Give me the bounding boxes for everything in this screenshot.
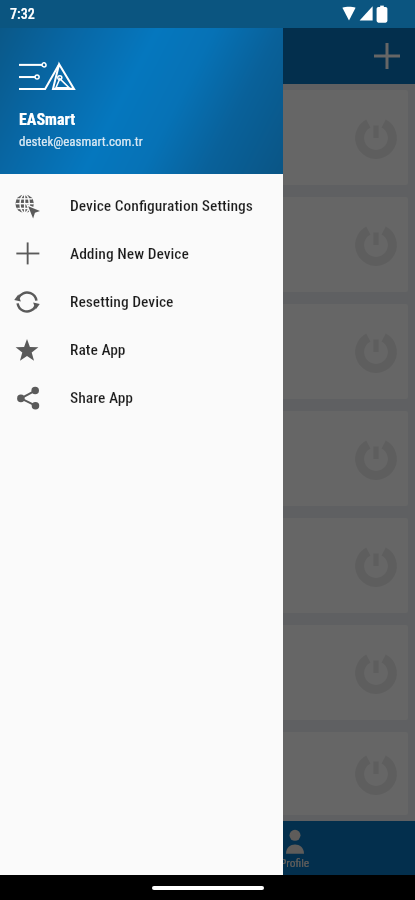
button[interactable]: Rate App [0, 326, 283, 374]
staticText: EASmart [56, 45, 126, 68]
staticText: Adding New Device [70, 245, 189, 263]
staticText: Profile [280, 856, 310, 869]
button[interactable]: Device [7, 90, 408, 185]
staticText: Resetting Device [70, 293, 174, 311]
button[interactable]: Device [7, 304, 408, 399]
button[interactable]: Device [7, 197, 408, 292]
button[interactable]: Device [7, 411, 408, 506]
staticText: EASmart [19, 110, 76, 129]
button[interactable]: Device Configuration Settings [0, 182, 283, 230]
button[interactable]: Add new device [359, 28, 415, 84]
staticText: Device [25, 118, 67, 137]
button[interactable]: Profile [206, 821, 383, 875]
staticText: Device [25, 225, 67, 244]
staticText: Device [25, 332, 67, 351]
button[interactable]: Adding New Device [0, 230, 283, 278]
staticText: destek@easmart.com.tr [19, 134, 143, 149]
button[interactable]: Share App [0, 374, 283, 422]
button[interactable]: Resetting Device [0, 278, 283, 326]
staticText: Share App [70, 389, 134, 407]
button[interactable]: Open navigation drawer [0, 28, 56, 84]
button[interactable]: Device [7, 625, 408, 720]
staticText: Rate App [70, 341, 126, 359]
staticText: Offline [25, 143, 58, 158]
button[interactable]: Device [7, 732, 408, 815]
staticText: Offline [25, 357, 58, 372]
staticText: Offline [25, 250, 58, 265]
staticText: Device Configuration Settings [70, 197, 253, 215]
staticText: 7:32 [10, 6, 35, 22]
button[interactable]: Device [7, 518, 408, 613]
